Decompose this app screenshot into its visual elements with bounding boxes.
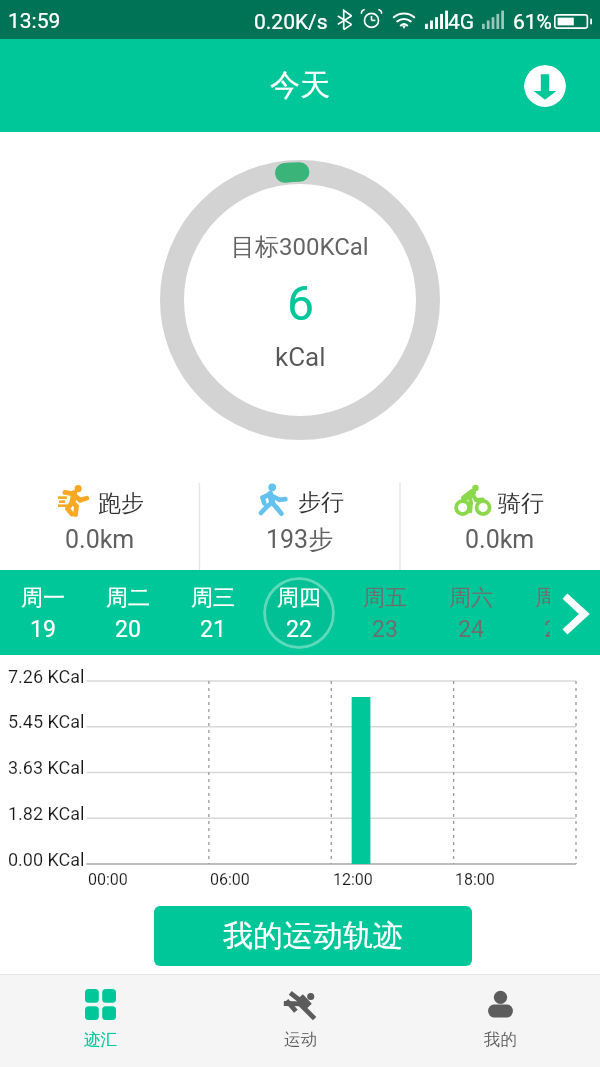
button[interactable]: 步行	[200, 480, 400, 570]
staticText: 06:00	[210, 870, 250, 889]
staticText: 周六	[449, 584, 493, 612]
staticText: 0.0km	[465, 525, 535, 554]
staticText: 3.63 KCal	[8, 757, 85, 778]
staticText: 13:59	[8, 9, 61, 34]
staticText: 21	[200, 616, 226, 643]
button[interactable]: 跑步	[0, 480, 200, 570]
button[interactable]: Next week	[550, 570, 600, 655]
button[interactable]: 周五	[342, 570, 428, 655]
staticText: 193步	[266, 524, 334, 555]
staticText: 周一	[21, 584, 65, 612]
staticText: 0.00 KCal	[8, 849, 85, 870]
staticText: 周三	[191, 584, 235, 612]
staticText: 22	[286, 616, 312, 643]
staticText: 今天	[270, 66, 330, 104]
staticText: 0.0km	[65, 525, 135, 554]
staticText: 25	[544, 616, 570, 643]
button[interactable]: 周一	[0, 570, 85, 655]
staticText: 0.20K/s	[254, 10, 328, 35]
staticText: 运动	[284, 1029, 317, 1050]
button[interactable]: 我的运动轨迹	[154, 906, 472, 966]
staticText: 周五	[363, 584, 407, 612]
staticText: 5.45 KCal	[8, 711, 85, 732]
staticText: 周二	[106, 584, 150, 612]
button[interactable]: 骑行	[400, 480, 600, 570]
staticText: 24	[458, 616, 484, 643]
staticText: kCal	[275, 342, 326, 372]
staticText: 周日	[535, 584, 579, 612]
button[interactable]: 周日	[514, 570, 600, 655]
staticText: 00:00	[88, 870, 128, 889]
button[interactable]: 我的	[400, 975, 600, 1067]
staticText: 步行	[298, 488, 344, 517]
staticText: 20	[115, 616, 141, 643]
staticText: 我的运动轨迹	[223, 917, 403, 955]
staticText: 骑行	[498, 489, 544, 518]
staticText: 23	[372, 616, 398, 643]
button[interactable]: 周三	[170, 570, 256, 655]
staticText: 4G	[448, 10, 475, 35]
staticText: 1.82 KCal	[8, 803, 85, 824]
button[interactable]: 周四	[256, 570, 342, 655]
staticText: 12:00	[333, 870, 373, 889]
button[interactable]: 迹汇	[0, 975, 200, 1067]
staticText: 7.26 KCal	[8, 666, 85, 687]
button[interactable]: Download	[524, 65, 566, 107]
staticText: 目标300KCal	[231, 232, 369, 262]
staticText: 迹汇	[84, 1029, 117, 1050]
staticText: 61%	[513, 10, 552, 35]
staticText: 周四	[277, 584, 321, 612]
staticText: 6	[287, 275, 314, 331]
button[interactable]: 运动	[200, 975, 400, 1067]
staticText: 跑步	[98, 489, 144, 518]
button[interactable]: 周六	[428, 570, 514, 655]
staticText: 我的	[484, 1029, 517, 1050]
button[interactable]: 周二	[85, 570, 170, 655]
staticText: 19	[30, 616, 56, 643]
staticText: 18:00	[455, 870, 495, 889]
